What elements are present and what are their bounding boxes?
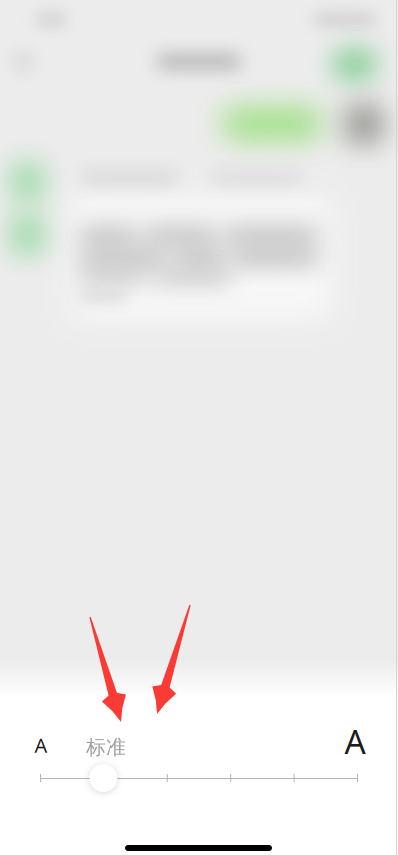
staticText: A bbox=[34, 732, 47, 758]
staticText: 标准 bbox=[86, 735, 126, 760]
staticText: A bbox=[344, 719, 365, 763]
button[interactable]: Font size bbox=[0, 762, 398, 796]
button[interactable]: A bbox=[340, 726, 370, 756]
button[interactable]: A bbox=[26, 733, 56, 757]
